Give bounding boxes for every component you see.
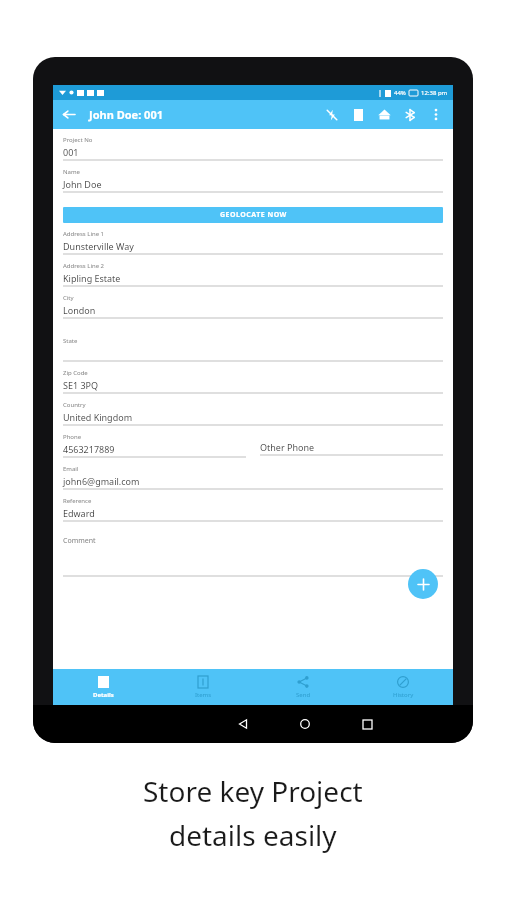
- button[interactable]: Zip Code: [63, 369, 443, 401]
- button[interactable]: Other Phone: [260, 433, 443, 463]
- staticText: Country: [63, 401, 86, 409]
- staticText: Address Line 1: [63, 230, 105, 238]
- button[interactable]: Back: [53, 100, 83, 129]
- staticText: 12:38 pm: [421, 89, 448, 97]
- staticText: Kipling Estate: [63, 272, 121, 284]
- button[interactable]: Address Line 1: [63, 230, 443, 262]
- staticText: City: [63, 294, 74, 302]
- button[interactable]: Phone: [63, 433, 246, 465]
- staticText: Phone: [63, 433, 82, 441]
- button[interactable]: State: [63, 337, 443, 369]
- staticText: Name: [63, 168, 80, 176]
- button[interactable]: Details: [53, 669, 153, 705]
- staticText: Other Phone: [260, 441, 315, 453]
- button[interactable]: Email: [63, 465, 443, 497]
- button[interactable]: Delete: [345, 100, 371, 129]
- button[interactable]: Project No: [63, 136, 443, 168]
- staticText: State: [63, 337, 78, 345]
- staticText: Details: [93, 691, 114, 699]
- button[interactable]: Home: [297, 716, 313, 732]
- staticText: Comment: [63, 536, 96, 546]
- button[interactable]: More options: [423, 100, 449, 129]
- button[interactable]: Add: [408, 569, 438, 599]
- staticText: SE1 3PQ: [63, 379, 99, 391]
- button[interactable]: Bluetooth: [397, 100, 423, 129]
- button[interactable]: Save: [371, 100, 397, 129]
- button[interactable]: Country: [63, 401, 443, 433]
- staticText: details easily: [169, 816, 337, 854]
- button[interactable]: History: [353, 669, 453, 705]
- staticText: History: [393, 691, 414, 699]
- staticText: Project No: [63, 136, 93, 144]
- staticText: John Doe: [63, 178, 102, 190]
- staticText: 4563217889: [63, 443, 115, 455]
- button[interactable]: Back: [235, 716, 251, 732]
- staticText: United Kingdom: [63, 411, 133, 423]
- staticText: john6@gmail.com: [63, 475, 140, 487]
- button[interactable]: Name: [63, 168, 443, 200]
- staticText: GEOLOCATE NOW: [220, 210, 287, 220]
- button[interactable]: Reference: [63, 497, 443, 529]
- staticText: London: [63, 304, 96, 316]
- staticText: Zip Code: [63, 369, 88, 377]
- staticText: Items: [195, 691, 212, 699]
- button[interactable]: Flash off: [319, 100, 345, 129]
- staticText: Send: [296, 691, 311, 699]
- button[interactable]: Items: [153, 669, 253, 705]
- staticText: 001: [63, 146, 79, 158]
- button[interactable]: City: [63, 294, 443, 326]
- staticText: Store key Project: [143, 772, 363, 810]
- button[interactable]: Recents: [359, 716, 375, 732]
- staticText: Dunsterville Way: [63, 240, 134, 252]
- staticText: Reference: [63, 497, 92, 505]
- staticText: Address Line 2: [63, 262, 105, 270]
- staticText: 44%: [394, 89, 406, 97]
- button[interactable]: Send: [253, 669, 353, 705]
- staticText: Edward: [63, 507, 95, 519]
- button[interactable]: GEOLOCATE NOW: [63, 207, 443, 223]
- button[interactable]: Comment: [63, 536, 443, 577]
- staticText: Email: [63, 465, 79, 473]
- staticText: John Doe: 001: [89, 107, 163, 122]
- button[interactable]: Address Line 2: [63, 262, 443, 294]
